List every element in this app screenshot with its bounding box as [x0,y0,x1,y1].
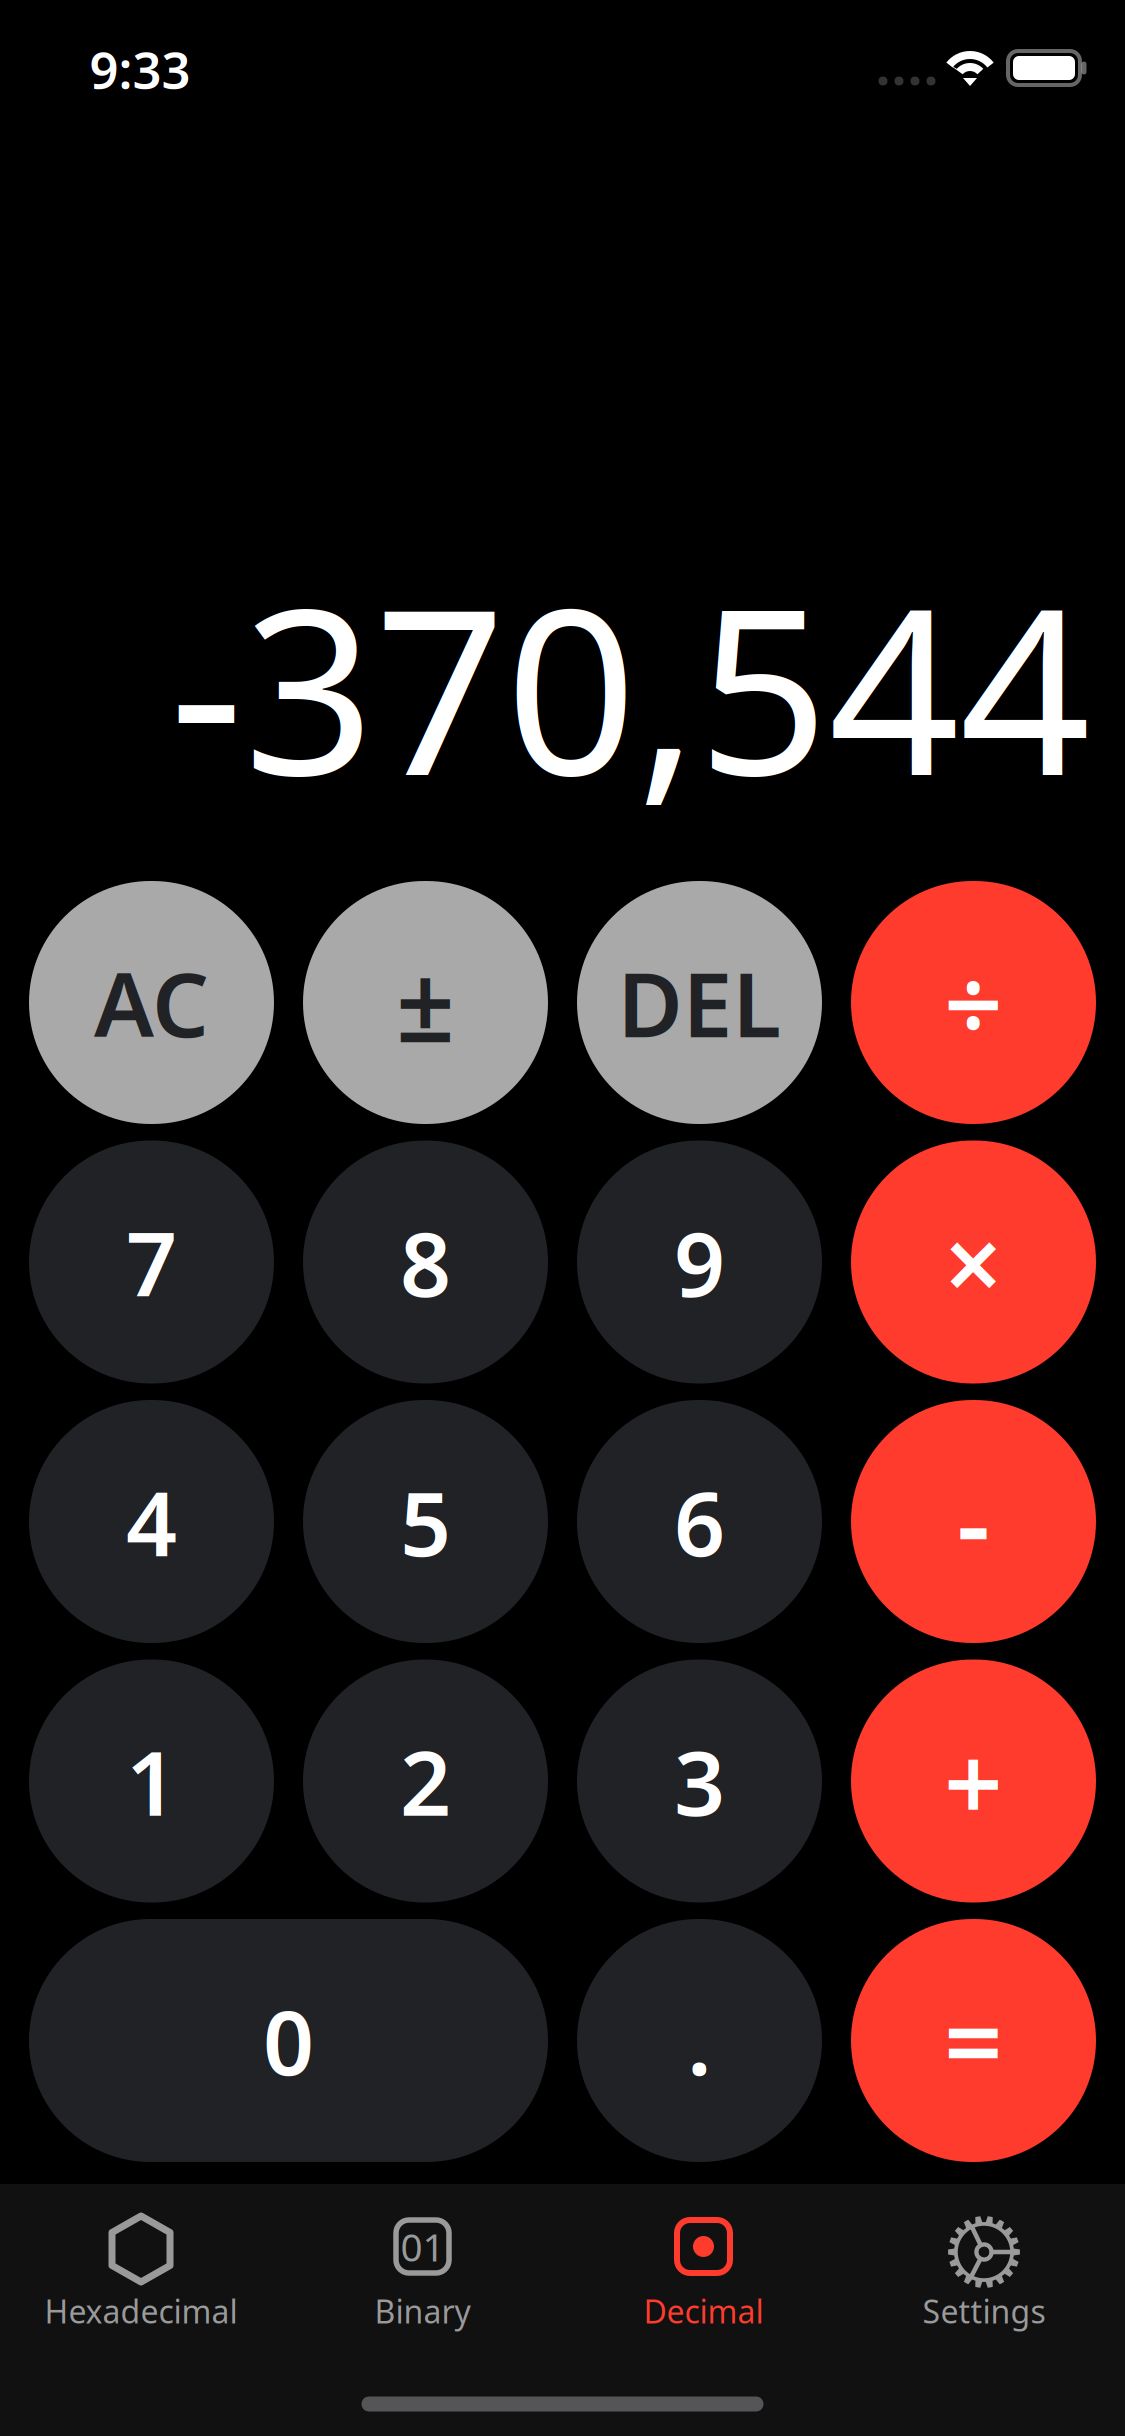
button[interactable]: Binary [282,2184,563,2344]
button[interactable]: AC [29,881,274,1124]
button[interactable]: = [851,1919,1096,2162]
button[interactable]: 6 [577,1400,822,1643]
staticText: DEL [617,943,781,1062]
staticText: 8 [400,1203,451,1321]
staticText: 2 [400,1722,451,1840]
staticText: Binary [374,2290,470,2332]
staticText: - [957,1453,990,1590]
staticText: × [944,1194,1003,1330]
button[interactable]: 0 [29,1919,548,2162]
staticText: Settings [922,2290,1045,2332]
button[interactable]: 2 [303,1659,548,1902]
staticText: 7 [126,1203,177,1321]
staticText: Hexadecimal [44,2290,237,2332]
staticText: = [944,1972,1003,2109]
staticText: 4 [126,1462,177,1581]
button[interactable]: ÷ [851,881,1096,1124]
button[interactable]: 9 [577,1140,822,1383]
button[interactable]: DEL [577,881,822,1124]
staticText: ± [396,934,455,1071]
button[interactable]: Settings [843,2184,1124,2344]
button[interactable]: - [851,1400,1096,1643]
staticText: . [687,1981,712,2100]
staticText: ÷ [944,934,1003,1071]
staticText: 9:33 [89,35,190,103]
staticText: 01 [400,2221,444,2272]
button[interactable]: ± [303,881,548,1124]
button[interactable]: × [851,1140,1096,1383]
staticText: 6 [674,1462,725,1581]
staticText: 5 [400,1462,451,1581]
staticText: 1 [126,1722,177,1840]
staticText: 9 [674,1203,725,1321]
button[interactable]: 7 [29,1140,274,1383]
button[interactable]: 8 [303,1140,548,1383]
button[interactable]: . [577,1919,822,2162]
staticText: Decimal [643,2290,763,2332]
staticText: 0 [263,1981,314,2100]
button[interactable]: 5 [303,1400,548,1643]
button[interactable]: 1 [29,1659,274,1902]
staticText: 3 [674,1722,725,1840]
button[interactable]: 4 [29,1400,274,1643]
staticText: + [944,1713,1003,1849]
staticText: -370,544 [169,534,1090,838]
button[interactable]: Decimal [563,2184,844,2344]
button[interactable]: Hexadecimal [0,2184,281,2344]
button[interactable]: 3 [577,1659,822,1902]
button[interactable]: + [851,1659,1096,1902]
staticText: AC [94,943,209,1062]
